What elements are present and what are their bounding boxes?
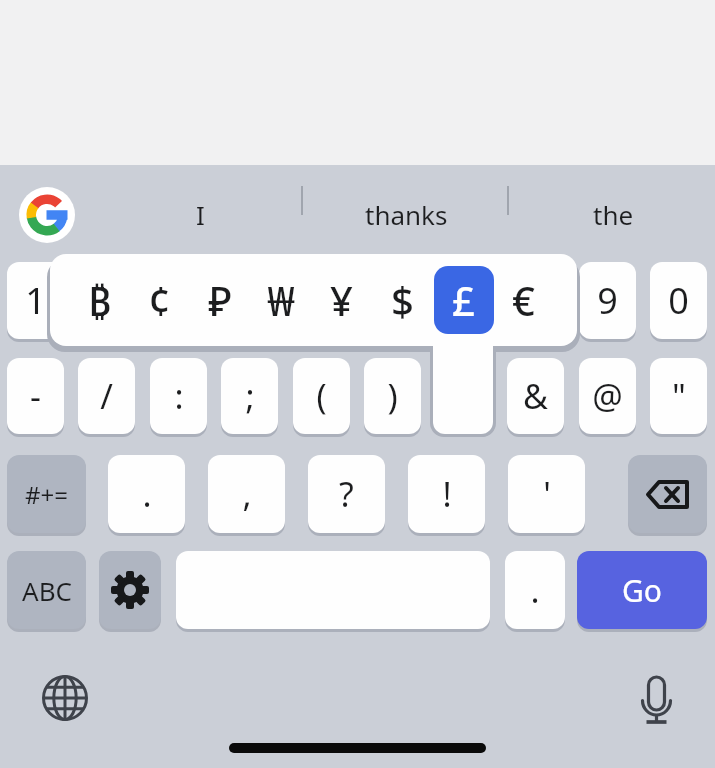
staticText: ? (339, 471, 354, 517)
button[interactable]: @ (579, 358, 636, 434)
button[interactable]: ; (221, 358, 278, 434)
button[interactable]: ? (308, 455, 385, 533)
button[interactable] (628, 455, 707, 533)
button[interactable] (434, 266, 494, 334)
staticText: & (523, 373, 548, 419)
staticText: 5 (311, 276, 332, 325)
staticText: € (512, 273, 535, 327)
staticText: : (174, 373, 184, 419)
button[interactable]: " (650, 358, 707, 434)
staticText: @ (592, 373, 623, 419)
button[interactable]: thanks (346, 185, 466, 243)
button[interactable]: , (208, 455, 285, 533)
button[interactable]: ABC (7, 551, 86, 629)
button[interactable]: ' (508, 455, 585, 533)
button[interactable] (634, 670, 679, 726)
staticText: #+= (25, 478, 68, 511)
staticText: 1 (25, 276, 46, 325)
button[interactable]: : (150, 358, 207, 434)
staticText: ) (387, 373, 398, 419)
staticText: / (100, 373, 113, 419)
staticText: ¢ (148, 273, 171, 327)
staticText: ( (316, 373, 327, 419)
button[interactable] (42, 675, 88, 721)
staticText: ₿ (88, 273, 111, 327)
staticText: ' (543, 471, 551, 517)
staticText: I (196, 197, 205, 232)
staticText: ! (442, 471, 452, 517)
staticText: " (672, 373, 686, 419)
staticText: 6 (382, 276, 403, 325)
button[interactable]: - (7, 358, 64, 434)
staticText: - (30, 373, 41, 419)
staticText: ₽ (208, 273, 232, 327)
staticText: £ (452, 273, 475, 327)
button[interactable]: the (553, 185, 673, 243)
button[interactable]: I (140, 185, 260, 243)
button[interactable]: 7 (436, 262, 493, 339)
staticText: ABC (22, 573, 72, 608)
button[interactable] (19, 187, 75, 243)
button[interactable]: . (108, 455, 185, 533)
staticText: 8 (525, 276, 546, 325)
staticText: ; (245, 373, 255, 419)
staticText: ₩ (267, 273, 295, 327)
button[interactable]: Go (577, 551, 707, 629)
button[interactable]: 6 (364, 262, 421, 339)
staticText: . (530, 567, 540, 613)
button[interactable]: & (507, 358, 564, 434)
staticText: , (242, 471, 252, 517)
button[interactable]: 5 (293, 262, 350, 339)
staticText: $ (391, 273, 414, 327)
staticText: the (593, 197, 634, 232)
staticText: 9 (597, 276, 618, 325)
button[interactable]: 9 (579, 262, 636, 339)
button[interactable]: ( (293, 358, 350, 434)
staticText: 0 (668, 276, 689, 325)
button[interactable]: 1 (7, 262, 64, 339)
staticText: ¥ (330, 273, 353, 327)
staticText: 2 (96, 276, 117, 325)
button[interactable]: 2 (78, 262, 135, 339)
button[interactable]: #+= (7, 455, 86, 533)
button[interactable]: . (505, 551, 565, 629)
button[interactable]: 0 (650, 262, 707, 339)
staticText: Go (622, 570, 662, 611)
button[interactable] (436, 358, 493, 434)
staticText: 7 (454, 276, 475, 325)
button[interactable] (99, 551, 161, 629)
staticText: thanks (365, 197, 448, 232)
button[interactable]: 4 (221, 262, 278, 339)
button[interactable]: 3 (150, 262, 207, 339)
button[interactable] (176, 551, 490, 629)
button[interactable]: 8 (507, 262, 564, 339)
button[interactable]: / (78, 358, 135, 434)
staticText: . (142, 471, 152, 517)
button[interactable]: ! (408, 455, 485, 533)
button[interactable]: ) (364, 358, 421, 434)
